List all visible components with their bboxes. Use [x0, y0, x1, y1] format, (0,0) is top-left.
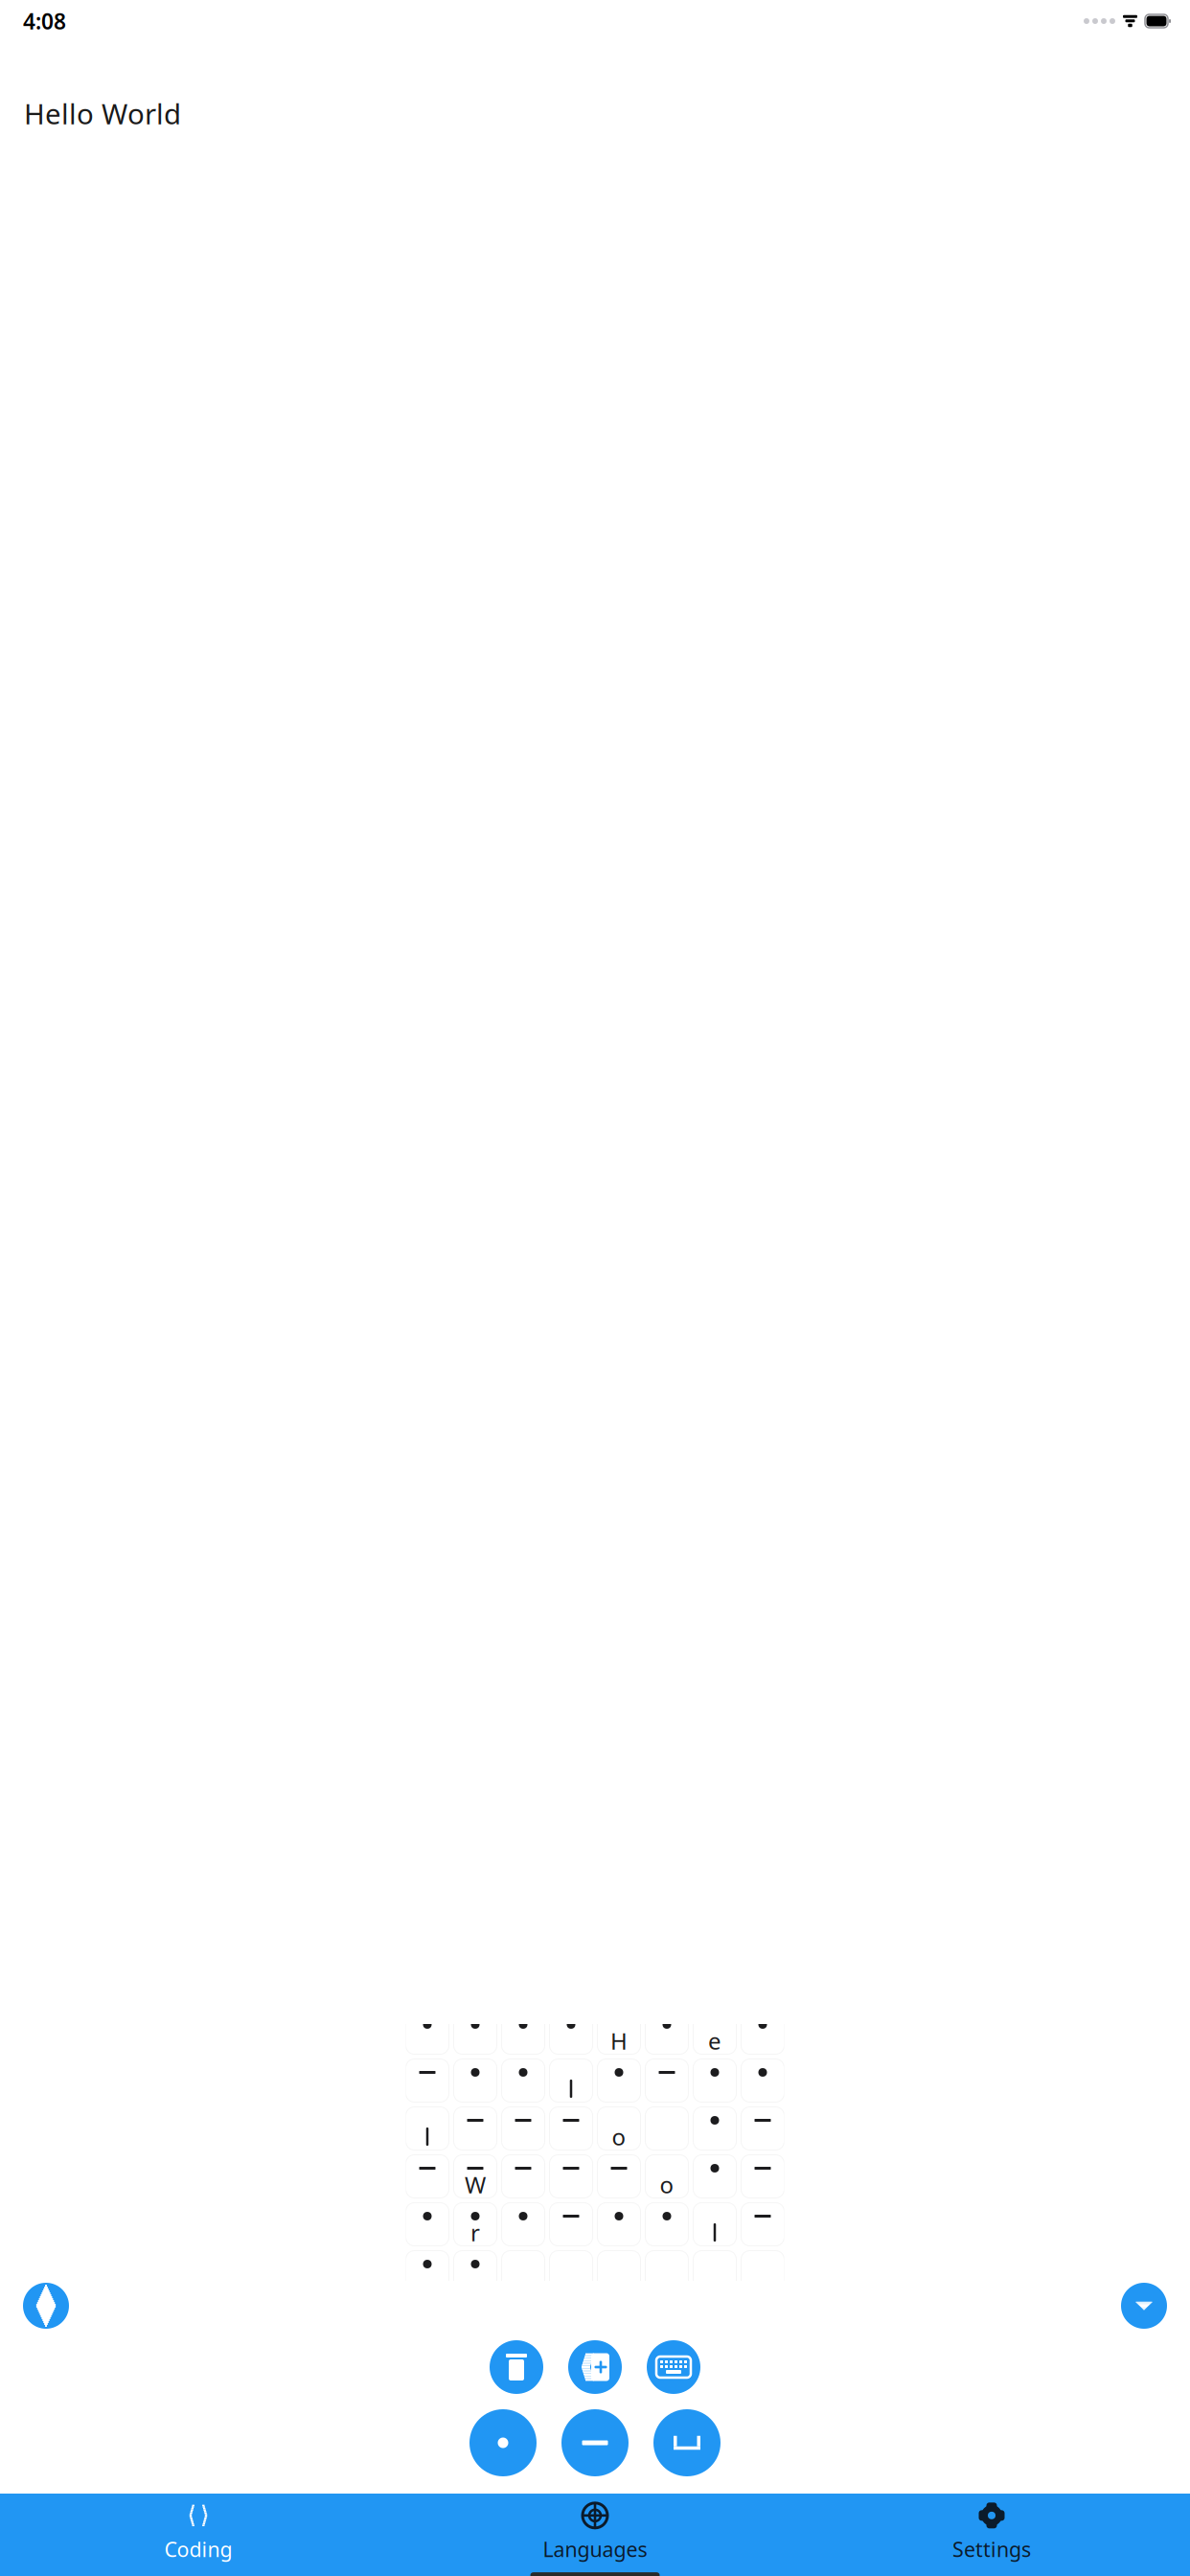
- button[interactable]: dash W: [454, 2155, 497, 2198]
- button[interactable]: Settings: [793, 2492, 1190, 2572]
- button[interactable]: Keyboard: [647, 2340, 700, 2394]
- button[interactable]: dot: [693, 2059, 736, 2102]
- staticText: 4:08: [23, 7, 66, 35]
- staticText: Hello World: [24, 95, 181, 132]
- button[interactable]: dot: [597, 2059, 641, 2102]
- button[interactable]: dash: [549, 2203, 593, 2246]
- button[interactable]: dot r: [454, 2203, 497, 2246]
- button[interactable]: dash: [406, 2059, 449, 2102]
- button[interactable]: Backspace: [568, 2340, 622, 2394]
- button[interactable]: Space: [653, 2409, 721, 2476]
- staticText: e: [708, 2026, 721, 2056]
- button[interactable]: dash: [741, 2107, 784, 2150]
- button[interactable]: dash: [502, 2107, 545, 2150]
- button[interactable]: Dot: [469, 2409, 537, 2476]
- button[interactable]: dot: [502, 2059, 545, 2102]
- button[interactable]: dash: [597, 2155, 641, 2198]
- button[interactable]: Play: [23, 2283, 69, 2329]
- button[interactable]: dot: [406, 2203, 449, 2246]
- staticText: Coding: [164, 2536, 232, 2563]
- button[interactable]: dash: [549, 2107, 593, 2150]
- button[interactable]: o: [597, 2107, 641, 2150]
- staticText: o: [660, 2169, 674, 2200]
- staticText: H: [610, 2026, 628, 2056]
- button[interactable]: dot: [406, 2251, 449, 2294]
- button[interactable]: Languages: [397, 2492, 793, 2572]
- button[interactable]: Dash: [561, 2409, 629, 2476]
- button[interactable]: Hide keyboard: [1121, 2283, 1167, 2329]
- button[interactable]: dash: [454, 2107, 497, 2150]
- button[interactable]: dash: [406, 2155, 449, 2198]
- button[interactable]: dot: [454, 2251, 497, 2294]
- staticText: o: [612, 2121, 626, 2152]
- staticText: Settings: [952, 2536, 1031, 2563]
- button[interactable]: dot: [741, 2059, 784, 2102]
- staticText: r: [470, 2217, 480, 2248]
- button[interactable]: dash: [741, 2155, 784, 2198]
- staticText: W: [465, 2169, 486, 2200]
- button[interactable]: dot: [549, 2011, 593, 2054]
- button[interactable]: Coding: [0, 2492, 397, 2572]
- button[interactable]: dot: [502, 2203, 545, 2246]
- button[interactable]: dot: [454, 2059, 497, 2102]
- button[interactable]: separator: [549, 2059, 593, 2102]
- button[interactable]: dot: [597, 2203, 641, 2246]
- button[interactable]: separator: [406, 2107, 449, 2150]
- button[interactable]: dash: [502, 2155, 545, 2198]
- button[interactable]: dot: [741, 2011, 784, 2054]
- button[interactable]: dash: [645, 2059, 688, 2102]
- button[interactable]: dot: [645, 2011, 688, 2054]
- button[interactable]: dot: [502, 2011, 545, 2054]
- button[interactable]: dot: [693, 2155, 736, 2198]
- button[interactable]: dot: [454, 2011, 497, 2054]
- button[interactable]: dot: [693, 2107, 736, 2150]
- button[interactable]: H: [597, 2011, 641, 2054]
- button[interactable]: dash: [549, 2155, 593, 2198]
- button[interactable]: dot: [645, 2203, 688, 2246]
- staticText: Languages: [543, 2536, 647, 2563]
- button[interactable]: o: [645, 2155, 688, 2198]
- button[interactable]: Clear: [490, 2340, 543, 2394]
- button[interactable]: separator: [693, 2203, 736, 2246]
- button[interactable]: dash: [741, 2203, 784, 2246]
- button[interactable]: e: [693, 2011, 736, 2054]
- button[interactable]: dot: [406, 2011, 449, 2054]
